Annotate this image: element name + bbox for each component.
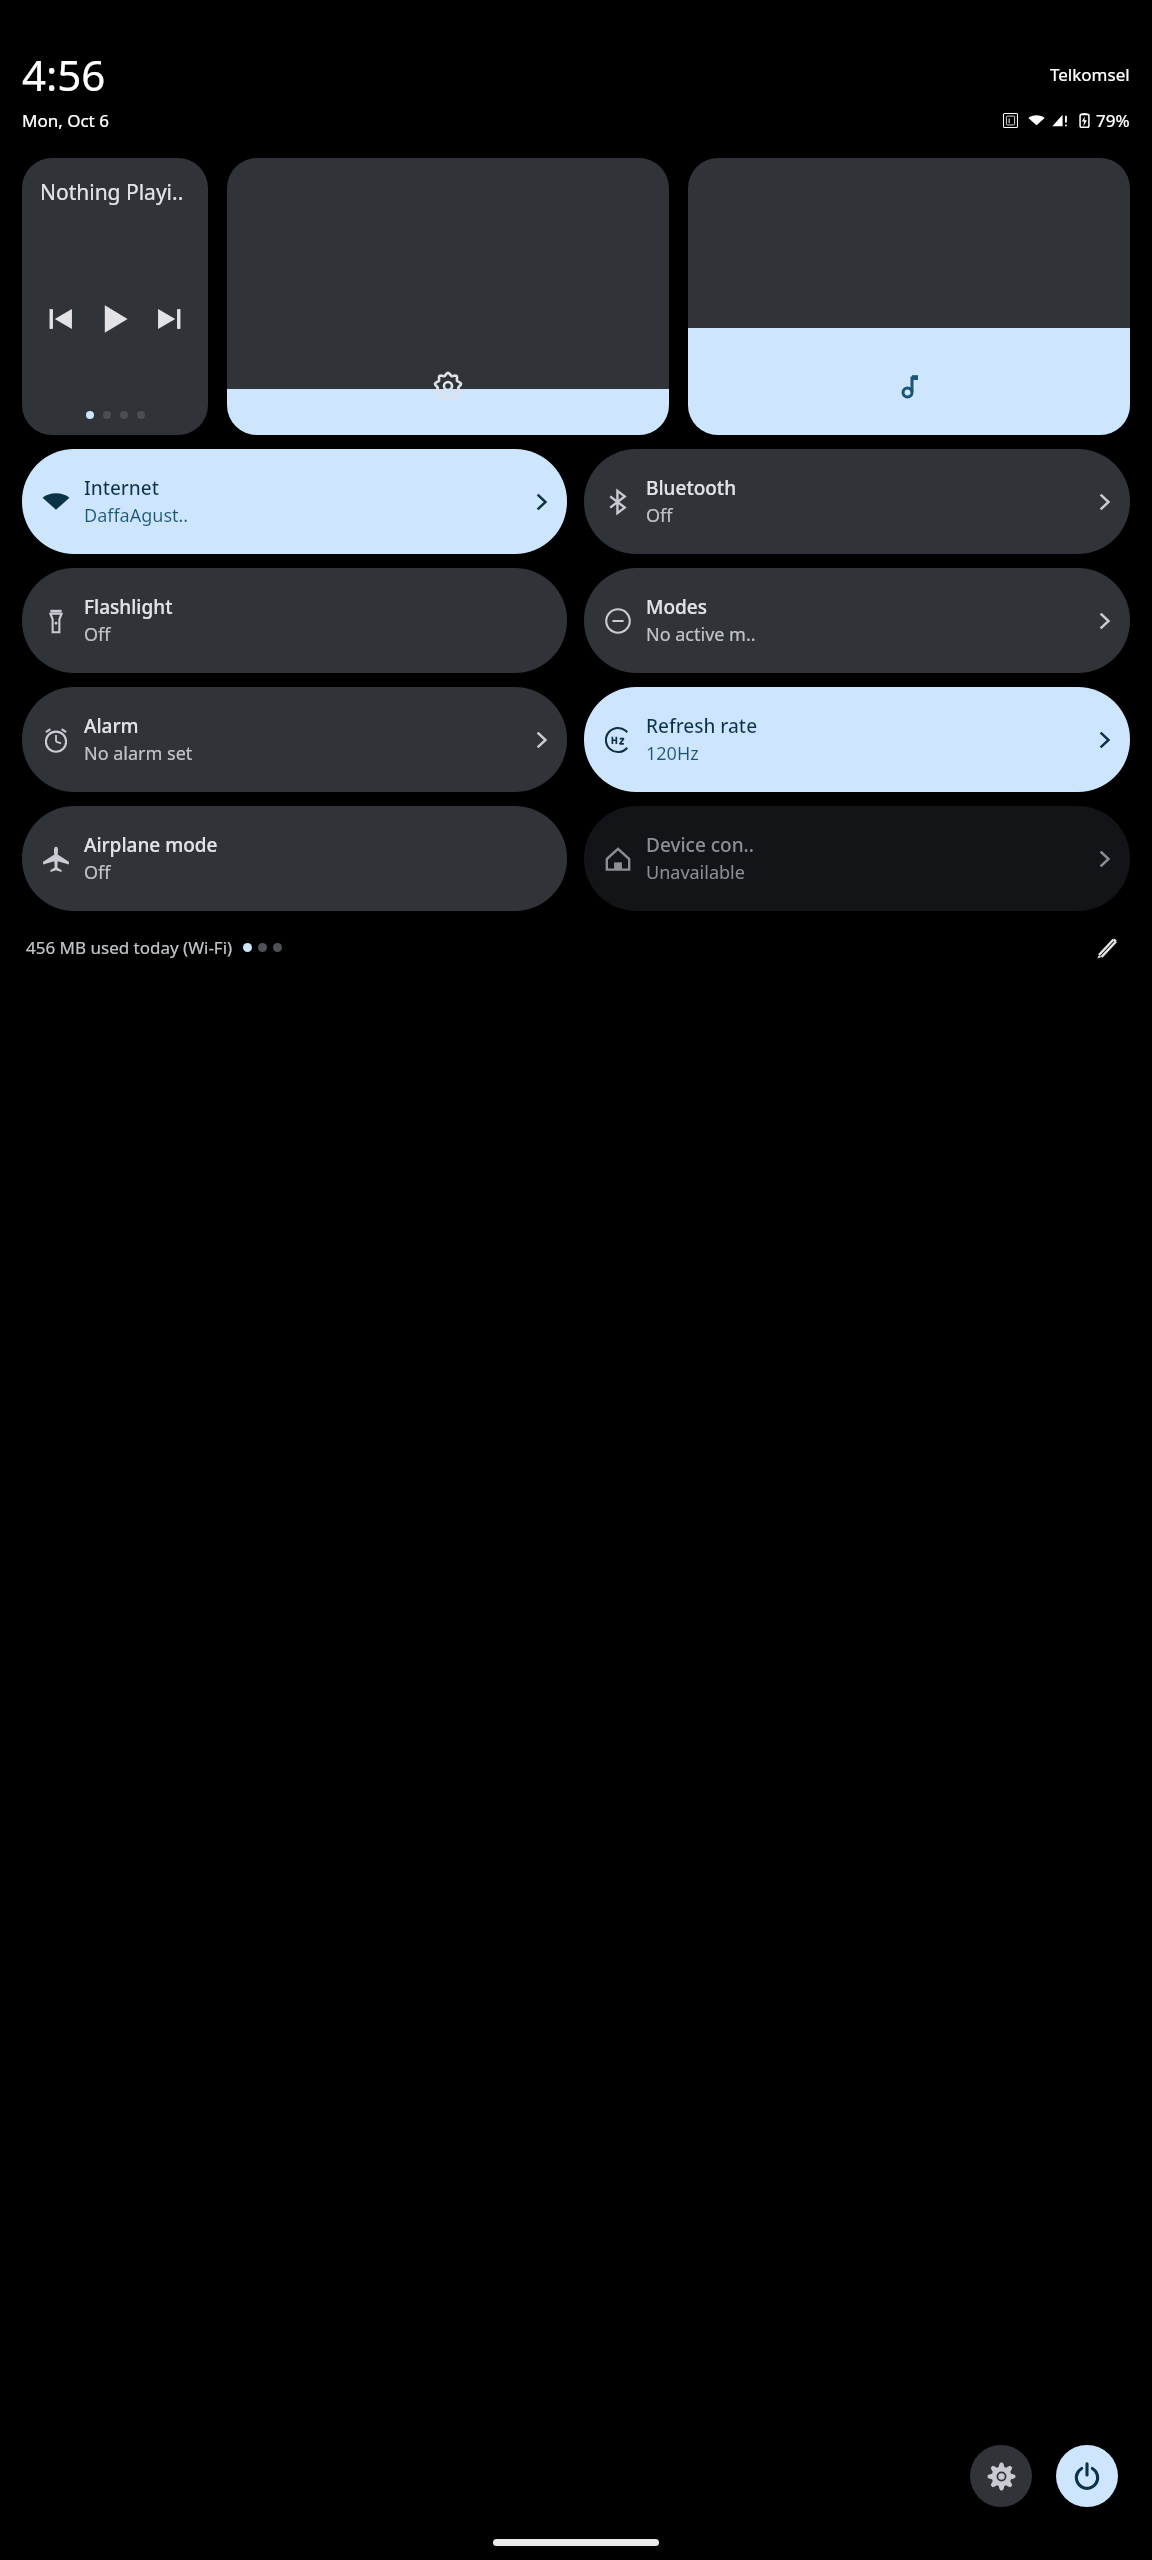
staticText: Off — [84, 860, 111, 885]
button[interactable]: Device con.. — [584, 806, 1130, 911]
staticText: Nothing Playi.. — [40, 178, 184, 207]
button[interactable]: Previous — [44, 302, 78, 336]
staticText: Flashlight — [84, 594, 173, 620]
staticText: Modes — [646, 594, 707, 620]
staticText: Off — [84, 622, 111, 647]
button[interactable]: Settings — [970, 2445, 1032, 2507]
staticText: No active m.. — [646, 622, 756, 647]
button[interactable]: Bluetooth — [584, 449, 1130, 554]
button[interactable]: Flashlight — [22, 568, 567, 673]
staticText: Airplane mode — [84, 832, 218, 858]
staticText: Unavailable — [646, 860, 745, 885]
staticText: Bluetooth — [646, 475, 737, 501]
staticText: Off — [646, 503, 673, 528]
button[interactable]: Nothing Playi.. — [22, 158, 208, 435]
staticText: Internet — [84, 475, 159, 501]
staticText: 456 MB used today (Wi-Fi) — [26, 936, 233, 959]
staticText: 120Hz — [646, 741, 699, 766]
button[interactable]: Alarm — [22, 687, 567, 792]
button[interactable]: Volume — [688, 158, 1130, 435]
staticText: No alarm set — [84, 741, 193, 766]
button[interactable]: Brightness — [227, 158, 669, 435]
button[interactable]: Modes — [584, 568, 1130, 673]
staticText: Refresh rate — [646, 713, 758, 739]
staticText: 79% — [1096, 109, 1130, 132]
button[interactable]: Power — [1056, 2445, 1118, 2507]
staticText: Alarm — [84, 713, 139, 739]
staticText: Mon, Oct 6 — [22, 109, 109, 132]
staticText: Device con.. — [646, 832, 754, 858]
button[interactable]: Airplane mode — [22, 806, 567, 911]
button[interactable]: Play — [95, 299, 135, 339]
staticText: DaffaAgust.. — [84, 503, 189, 528]
button[interactable]: Internet — [22, 449, 567, 554]
button[interactable]: Next — [152, 302, 186, 336]
button[interactable]: Edit tiles — [1086, 927, 1126, 967]
staticText: 4:56 — [22, 46, 106, 103]
staticText: Telkomsel — [1050, 63, 1130, 86]
button[interactable]: Refresh rate — [584, 687, 1130, 792]
